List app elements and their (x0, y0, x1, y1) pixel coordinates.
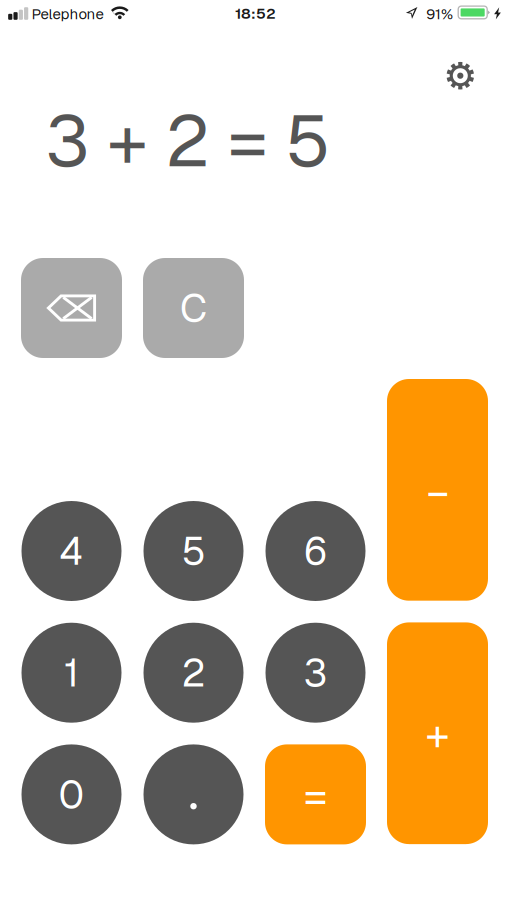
button[interactable]: Clear (143, 258, 244, 358)
staticText: 4 (59, 526, 83, 576)
staticText: = (304, 768, 327, 824)
button[interactable]: 6 (265, 501, 366, 601)
button[interactable]: Minus (387, 379, 488, 601)
button[interactable]: Equals (265, 744, 366, 844)
button[interactable]: 0 (21, 744, 122, 844)
staticText: 3 (303, 648, 327, 698)
button[interactable]: 3 (265, 623, 366, 723)
staticText: 2 (181, 648, 205, 698)
button[interactable]: 5 (143, 501, 244, 601)
button[interactable]: 4 (21, 501, 122, 601)
staticText: − (426, 464, 448, 520)
staticText: 0 (58, 769, 84, 820)
button[interactable]: 1 (21, 623, 122, 723)
staticText: 1 (64, 648, 79, 698)
staticText: 5 (181, 526, 205, 576)
button[interactable]: Decimal point (143, 744, 244, 844)
staticText: 18:52 (235, 4, 276, 23)
staticText: 6 (303, 526, 327, 576)
staticText: 3 + 2 = 5 (45, 94, 330, 187)
staticText: C (180, 283, 207, 333)
staticText: + (425, 707, 449, 762)
button[interactable]: Delete (21, 258, 122, 358)
button[interactable]: Plus (387, 622, 488, 844)
staticText: 91% (426, 4, 453, 24)
button[interactable]: 2 (143, 623, 244, 723)
button[interactable]: Settings (438, 54, 482, 98)
staticText: Pelephone (31, 4, 103, 24)
